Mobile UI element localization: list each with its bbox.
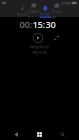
staticText: Audio xyxy=(17,11,27,17)
button[interactable]: Timer xyxy=(39,6,51,17)
staticText: 00: xyxy=(19,18,32,31)
staticText: Display xyxy=(52,9,62,19)
staticText: 15:30 xyxy=(32,18,55,31)
staticText: 21:04 xyxy=(61,0,70,6)
button[interactable]: Play xyxy=(32,32,44,44)
button[interactable]: Display xyxy=(51,6,62,17)
button[interactable]: Full screen xyxy=(51,32,62,43)
button[interactable]: Search xyxy=(56,129,70,139)
staticText: 00:15:30 xyxy=(32,50,46,55)
button[interactable]: Audio xyxy=(16,6,28,17)
button[interactable]: Subtitle xyxy=(28,6,39,17)
button[interactable]: Back xyxy=(9,129,23,139)
staticText: Timer xyxy=(40,11,51,17)
staticText: Sleep timer xyxy=(29,44,49,49)
button[interactable]: Home xyxy=(32,129,46,139)
staticText: Subtitle xyxy=(28,9,39,19)
